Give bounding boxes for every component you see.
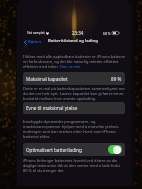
button[interactable]: Optimalisert batterilading, på bbox=[108, 145, 122, 154]
staticText: Maksimal kapasitet bbox=[26, 76, 68, 82]
staticText: I likhet med alle oppladbare batterier e… bbox=[23, 54, 125, 69]
staticText: iPhone forlenger batteriets levetid ved … bbox=[23, 158, 125, 173]
staticText: 68 % bbox=[103, 31, 111, 35]
staticText: Innebygde dynamiske programvare- og mask… bbox=[23, 119, 125, 139]
staticText: Batteri bbox=[28, 39, 42, 45]
staticText: Sist samplet bbox=[27, 31, 45, 35]
button[interactable]: Optimalisert batterilading bbox=[23, 143, 125, 156]
staticText: Dette er et mål på batterikapasiteten sa… bbox=[23, 86, 125, 101]
staticText: Batteritilstand og lading bbox=[48, 38, 98, 44]
staticText: 89 % bbox=[111, 76, 122, 82]
button[interactable]: Maksimal kapasitet bbox=[23, 72, 125, 85]
button[interactable]: Batteri bbox=[23, 38, 43, 46]
staticText: Optimalisert batterilading bbox=[26, 147, 82, 153]
staticText: 23:34 bbox=[72, 30, 84, 36]
staticText: Evne til maksimal ytelse bbox=[26, 105, 78, 111]
button[interactable]: Evne til maksimal ytelse bbox=[23, 102, 125, 114]
